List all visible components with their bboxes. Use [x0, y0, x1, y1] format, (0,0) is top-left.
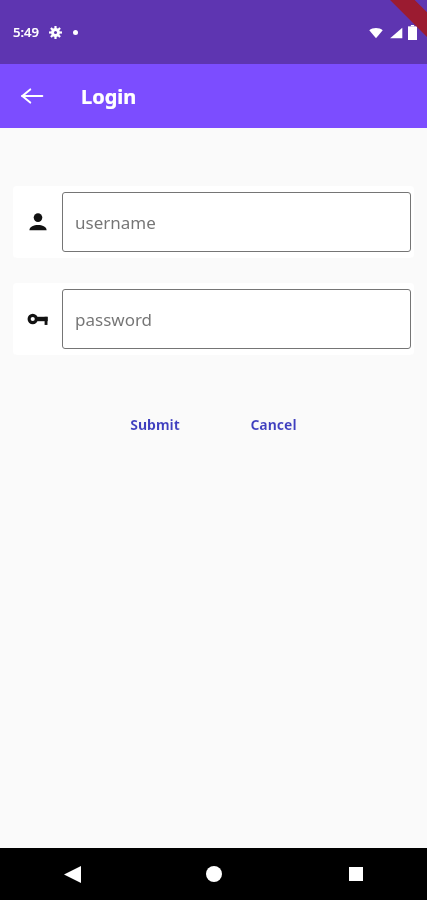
button[interactable]: username	[13, 186, 414, 258]
button[interactable]: Recent apps	[334, 852, 378, 896]
button[interactable]: Home	[192, 852, 236, 896]
staticText: Login	[81, 83, 137, 110]
staticText: username	[75, 211, 156, 234]
button[interactable]: password	[13, 283, 414, 355]
button[interactable]: Cancel	[242, 409, 305, 440]
staticText: 5:49	[13, 23, 39, 41]
button[interactable]: Back	[50, 852, 94, 896]
button[interactable]: Back	[12, 76, 52, 116]
button[interactable]: Submit	[122, 409, 188, 440]
staticText: password	[75, 308, 153, 331]
staticText: Submit	[130, 415, 180, 434]
staticText: Cancel	[250, 415, 297, 434]
